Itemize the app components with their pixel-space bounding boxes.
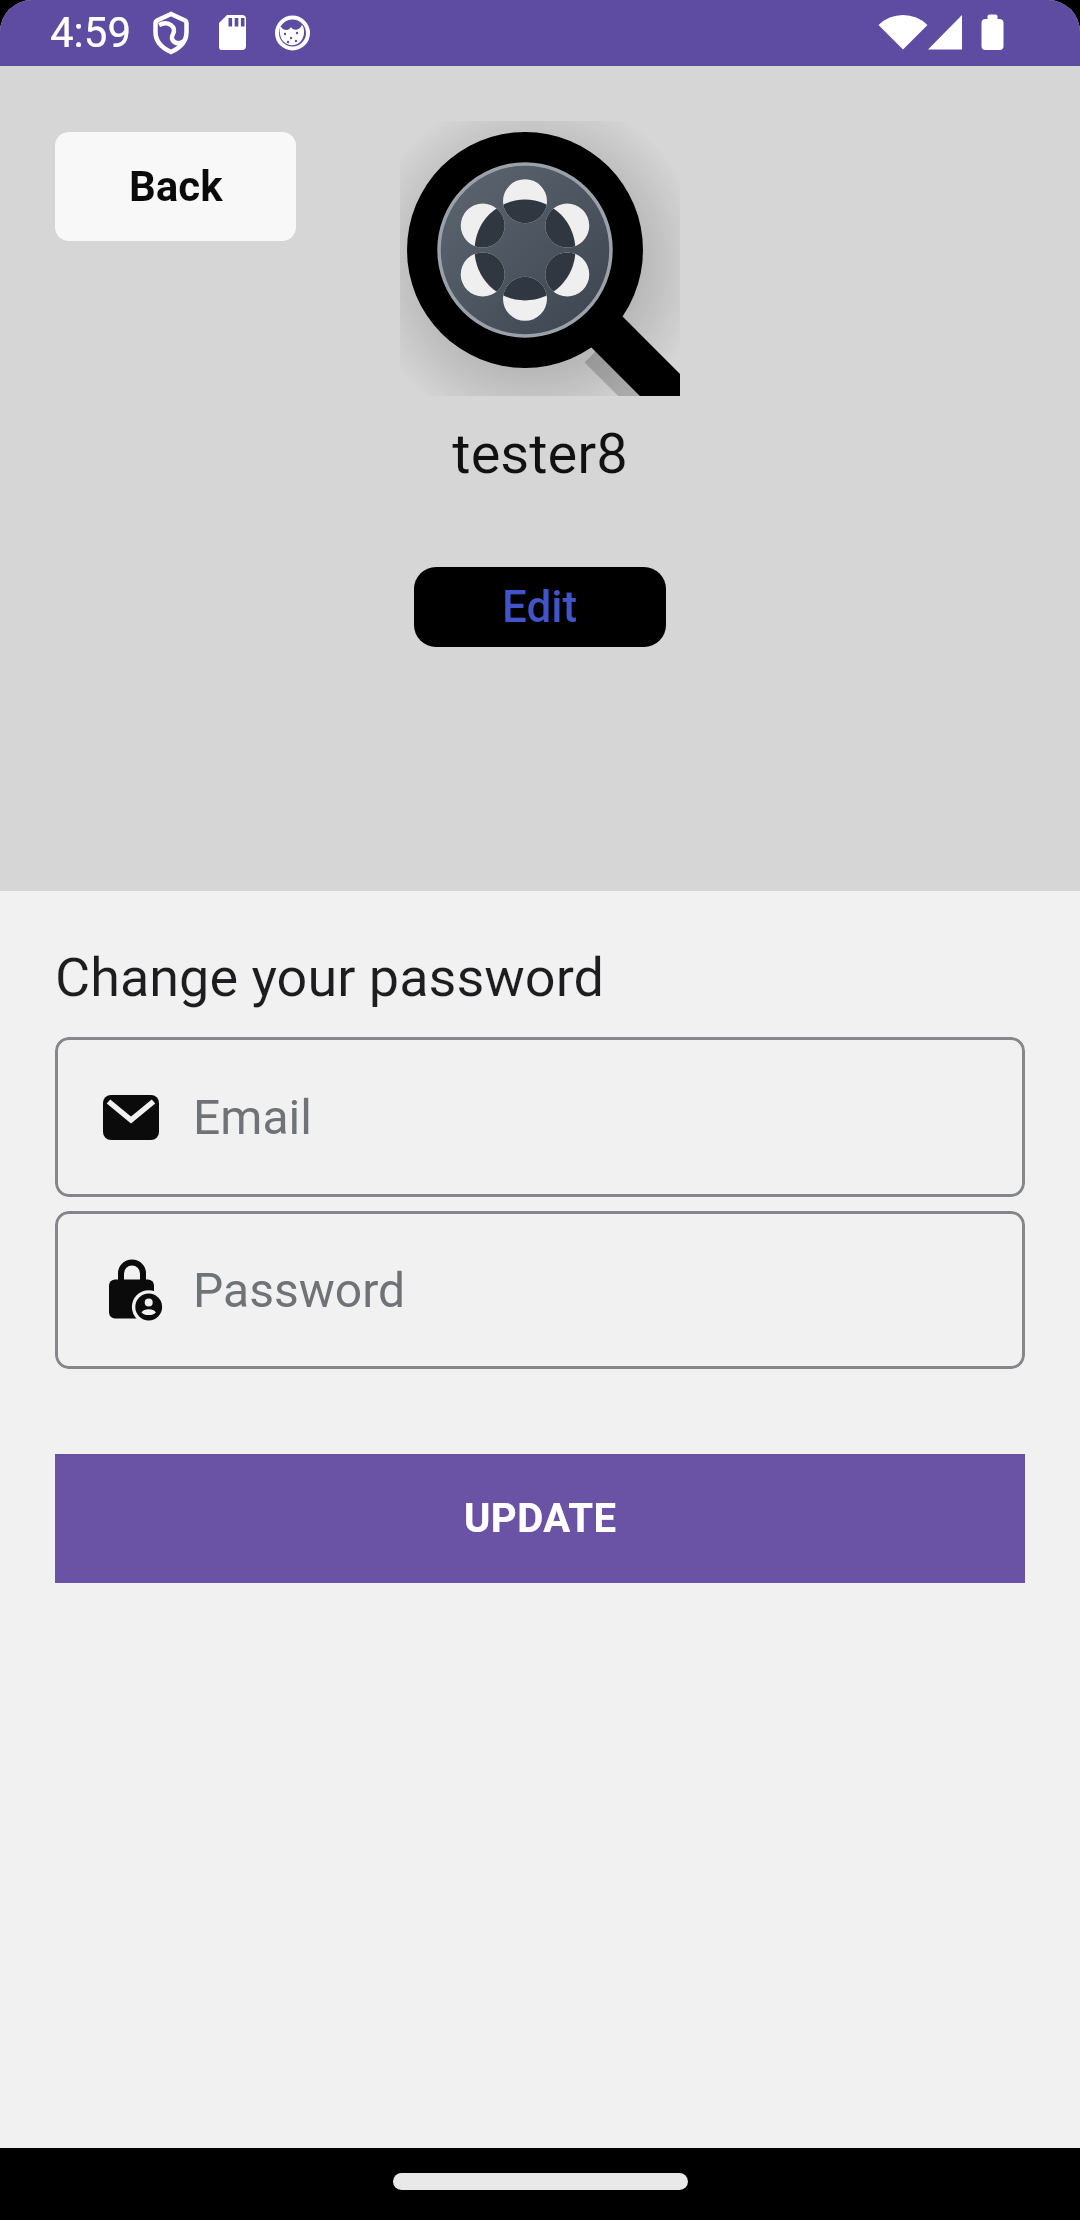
staticText: UPDATE	[464, 1495, 617, 1542]
button[interactable]: Edit	[414, 567, 666, 647]
staticText: tester8	[0, 421, 1080, 487]
staticText: Change your password	[55, 946, 604, 1009]
button[interactable]	[393, 2173, 688, 2190]
staticText: Password	[193, 1262, 406, 1318]
staticText: Back	[129, 162, 223, 211]
staticText: Email	[193, 1089, 312, 1145]
button[interactable]: Back	[55, 132, 296, 241]
staticText: Edit	[502, 581, 578, 633]
staticText: 4:59	[50, 8, 131, 57]
button[interactable]: Email	[55, 1037, 1025, 1197]
button[interactable]: UPDATE	[55, 1454, 1025, 1583]
button[interactable]: Password	[55, 1211, 1025, 1369]
